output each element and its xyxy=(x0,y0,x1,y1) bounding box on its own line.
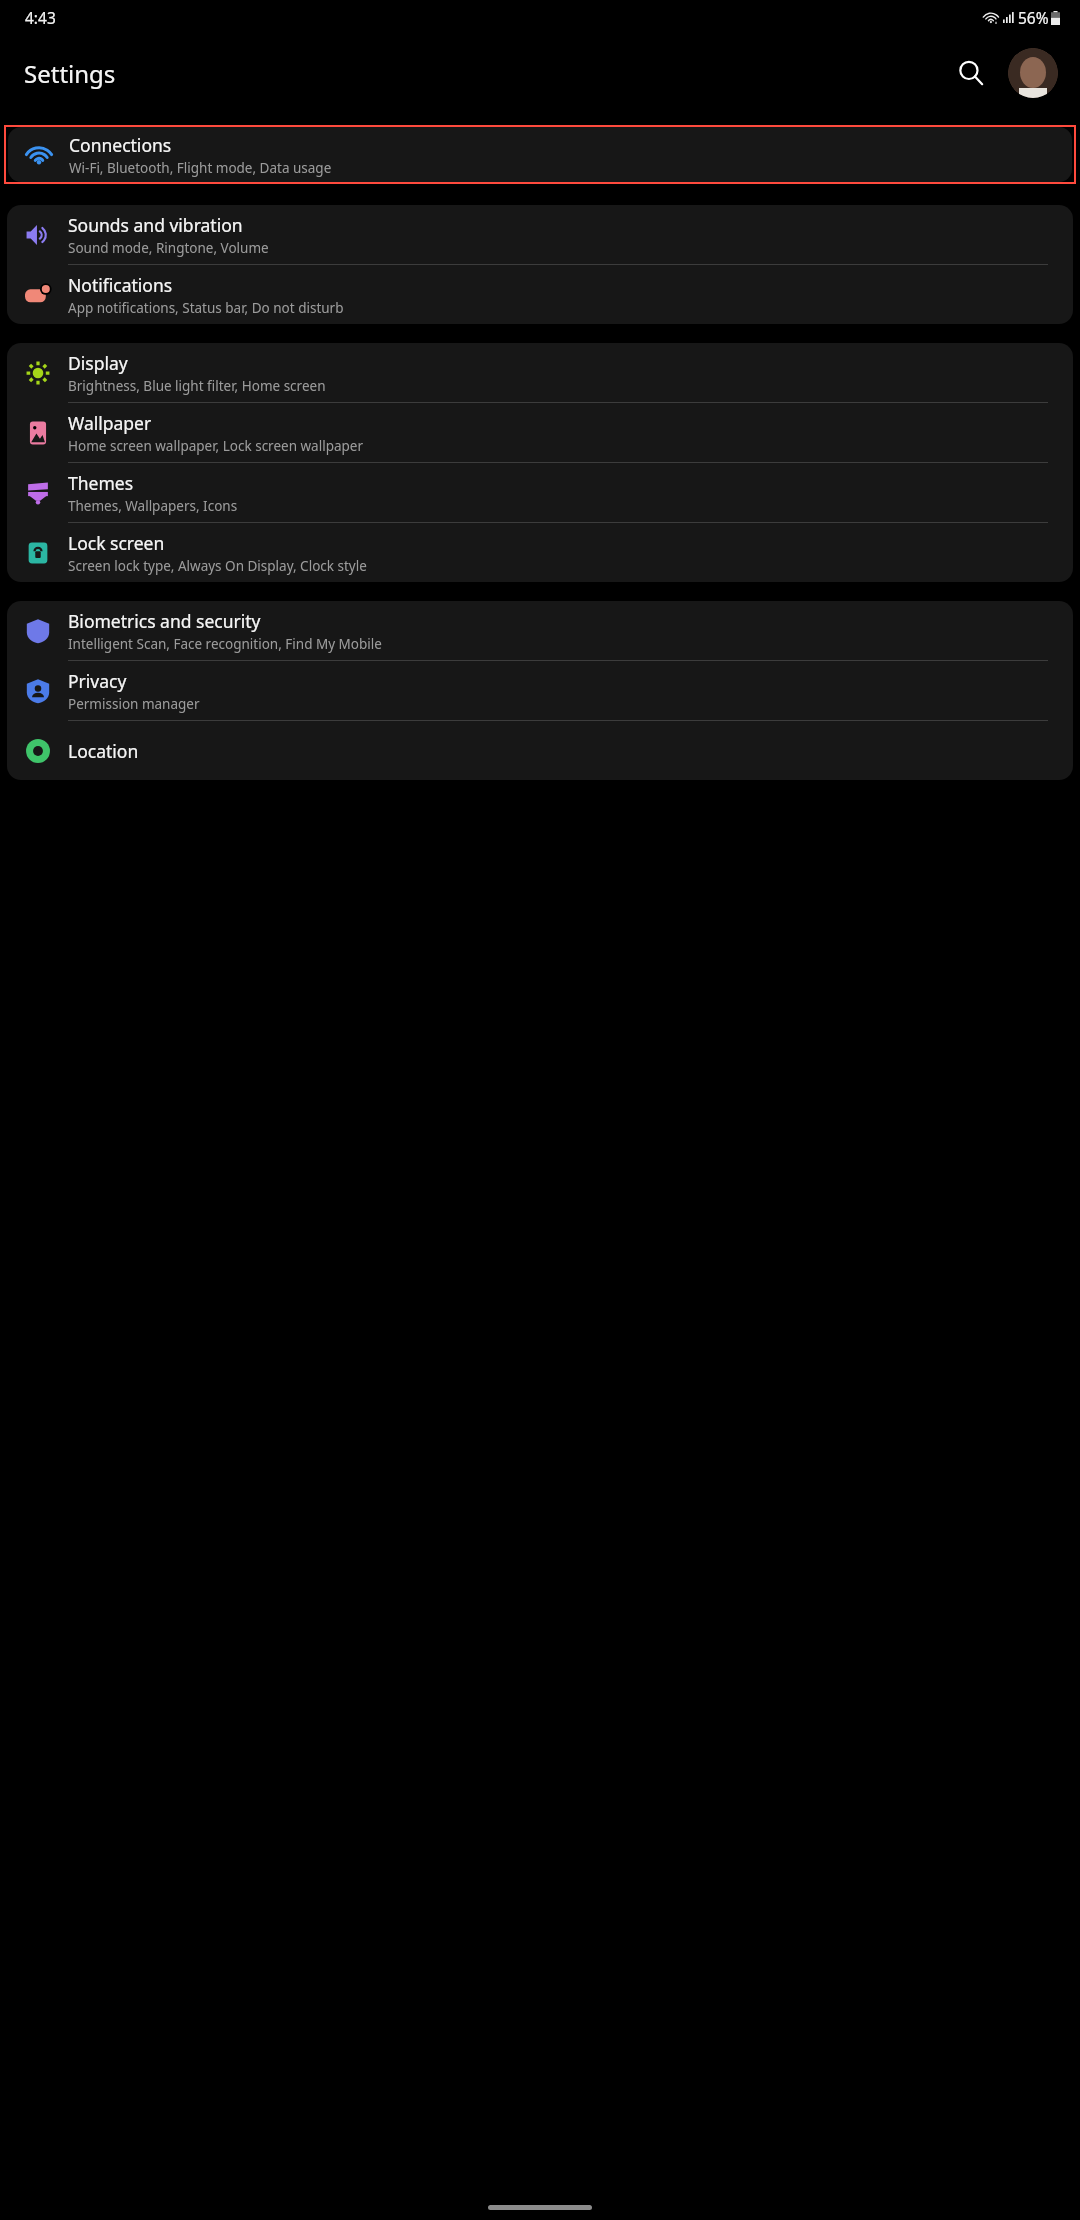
button[interactable]: Privacy xyxy=(7,661,1073,720)
staticText: Connections xyxy=(69,133,172,157)
staticText: Brightness, Blue light filter, Home scre… xyxy=(68,377,326,395)
staticText: Notifications xyxy=(68,273,173,297)
staticText: Permission manager xyxy=(68,695,200,713)
button[interactable]: Themes xyxy=(7,463,1073,522)
staticText: App notifications, Status bar, Do not di… xyxy=(68,299,344,317)
staticText: Screen lock type, Always On Display, Clo… xyxy=(68,557,367,575)
button[interactable]: Sounds and vibration xyxy=(7,205,1073,264)
button[interactable]: Biometrics and security xyxy=(7,601,1073,660)
staticText: Sounds and vibration xyxy=(68,213,243,237)
staticText: Display xyxy=(68,351,128,375)
button[interactable]: Connections xyxy=(8,127,1072,182)
staticText: Privacy xyxy=(68,669,127,693)
button[interactable]: Wallpaper xyxy=(7,403,1073,462)
staticText: Themes, Wallpapers, Icons xyxy=(68,497,238,515)
staticText: Wallpaper xyxy=(68,411,152,435)
button[interactable]: Profile xyxy=(1008,48,1058,98)
button[interactable]: Lock screen xyxy=(7,523,1073,582)
staticText: Themes xyxy=(68,471,134,495)
staticText: Biometrics and security xyxy=(68,609,261,633)
staticText: Sound mode, Ringtone, Volume xyxy=(68,239,269,257)
button[interactable]: Display xyxy=(7,343,1073,402)
button[interactable]: Search xyxy=(948,50,994,96)
staticText: 56% xyxy=(1018,7,1049,28)
button[interactable]: Location xyxy=(7,721,1073,780)
staticText: Intelligent Scan, Face recognition, Find… xyxy=(68,635,382,653)
staticText: Settings xyxy=(24,57,116,90)
staticText: Location xyxy=(68,739,139,763)
staticText: 4:43 xyxy=(25,7,56,28)
staticText: Lock screen xyxy=(68,531,165,555)
staticText: Wi-Fi, Bluetooth, Flight mode, Data usag… xyxy=(69,159,332,177)
staticText: Home screen wallpaper, Lock screen wallp… xyxy=(68,437,364,455)
button[interactable]: Notifications xyxy=(7,265,1073,324)
